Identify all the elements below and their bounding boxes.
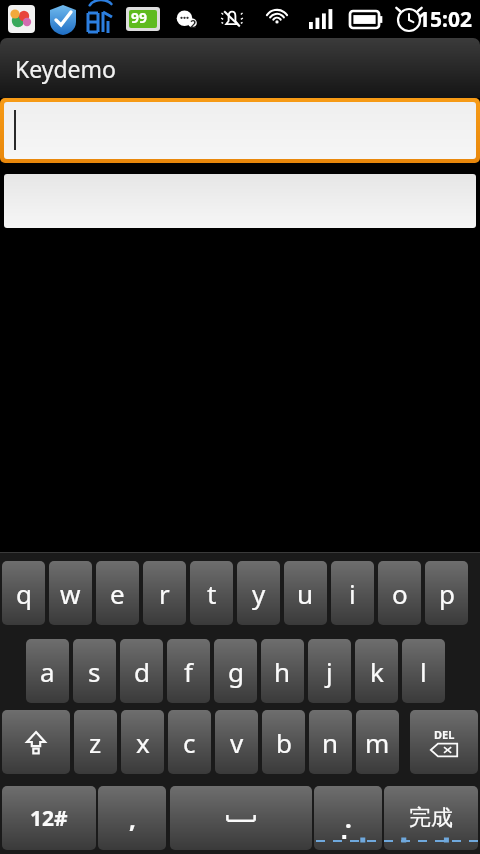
staticText: y — [252, 576, 266, 611]
staticText: x — [136, 725, 150, 760]
button[interactable]: g — [214, 639, 257, 703]
button[interactable]: 12# — [2, 786, 96, 850]
button[interactable]: Space — [170, 786, 312, 850]
staticText: f — [184, 654, 193, 689]
staticText: Keydemo — [15, 53, 117, 84]
button[interactable]: w — [49, 561, 92, 625]
button[interactable]: o — [378, 561, 421, 625]
staticText: l — [420, 654, 427, 689]
staticText: p — [439, 576, 455, 611]
staticText: s — [88, 654, 101, 689]
staticText: b — [276, 725, 292, 760]
button[interactable]: q — [2, 561, 45, 625]
button[interactable] — [4, 174, 476, 228]
staticText: . — [345, 802, 352, 835]
button[interactable] — [4, 102, 476, 159]
button[interactable]: h — [261, 639, 304, 703]
button[interactable]: . — [314, 786, 382, 850]
button[interactable]: n — [309, 710, 352, 774]
button[interactable]: j — [308, 639, 351, 703]
staticText: h — [274, 654, 291, 689]
staticText: o — [392, 576, 408, 611]
staticText: a — [40, 654, 55, 689]
staticText: q — [16, 576, 32, 611]
staticText: DEL — [434, 727, 455, 742]
button[interactable]: c — [168, 710, 211, 774]
staticText: , — [129, 802, 136, 835]
button[interactable]: b — [262, 710, 305, 774]
staticText: 完成 — [409, 804, 453, 832]
button[interactable]: k — [355, 639, 398, 703]
staticText: t — [207, 576, 217, 611]
button[interactable]: t — [190, 561, 233, 625]
staticText: u — [297, 576, 314, 611]
button[interactable]: z — [74, 710, 117, 774]
staticText: c — [183, 725, 196, 760]
staticText: g — [228, 654, 244, 689]
staticText: 2 — [190, 16, 197, 31]
staticText: w — [60, 576, 81, 611]
button[interactable]: , — [98, 786, 166, 850]
button[interactable]: Shift — [2, 710, 70, 774]
staticText: r — [159, 576, 170, 611]
button[interactable]: y — [237, 561, 280, 625]
staticText: m — [365, 725, 390, 760]
staticText: k — [370, 654, 384, 689]
staticText: j — [326, 654, 333, 689]
button[interactable]: f — [167, 639, 210, 703]
staticText: v — [230, 725, 244, 760]
button[interactable]: r — [143, 561, 186, 625]
button[interactable]: Delete — [410, 710, 478, 774]
staticText: z — [89, 725, 102, 760]
button[interactable]: 完成 — [384, 786, 478, 850]
button[interactable]: s — [73, 639, 116, 703]
button[interactable]: d — [120, 639, 163, 703]
button[interactable]: i — [331, 561, 374, 625]
button[interactable]: p — [425, 561, 468, 625]
staticText: i — [349, 576, 356, 611]
staticText: 12# — [30, 804, 68, 833]
button[interactable]: v — [215, 710, 258, 774]
button[interactable]: u — [284, 561, 327, 625]
button[interactable]: x — [121, 710, 164, 774]
button[interactable]: e — [96, 561, 139, 625]
button[interactable]: m — [356, 710, 399, 774]
staticText: e — [110, 576, 125, 611]
staticText: 99 — [131, 8, 148, 27]
staticText: 15:02 — [418, 5, 472, 34]
button[interactable]: a — [26, 639, 69, 703]
staticText: d — [134, 654, 150, 689]
staticText: n — [322, 725, 339, 760]
button[interactable]: l — [402, 639, 445, 703]
